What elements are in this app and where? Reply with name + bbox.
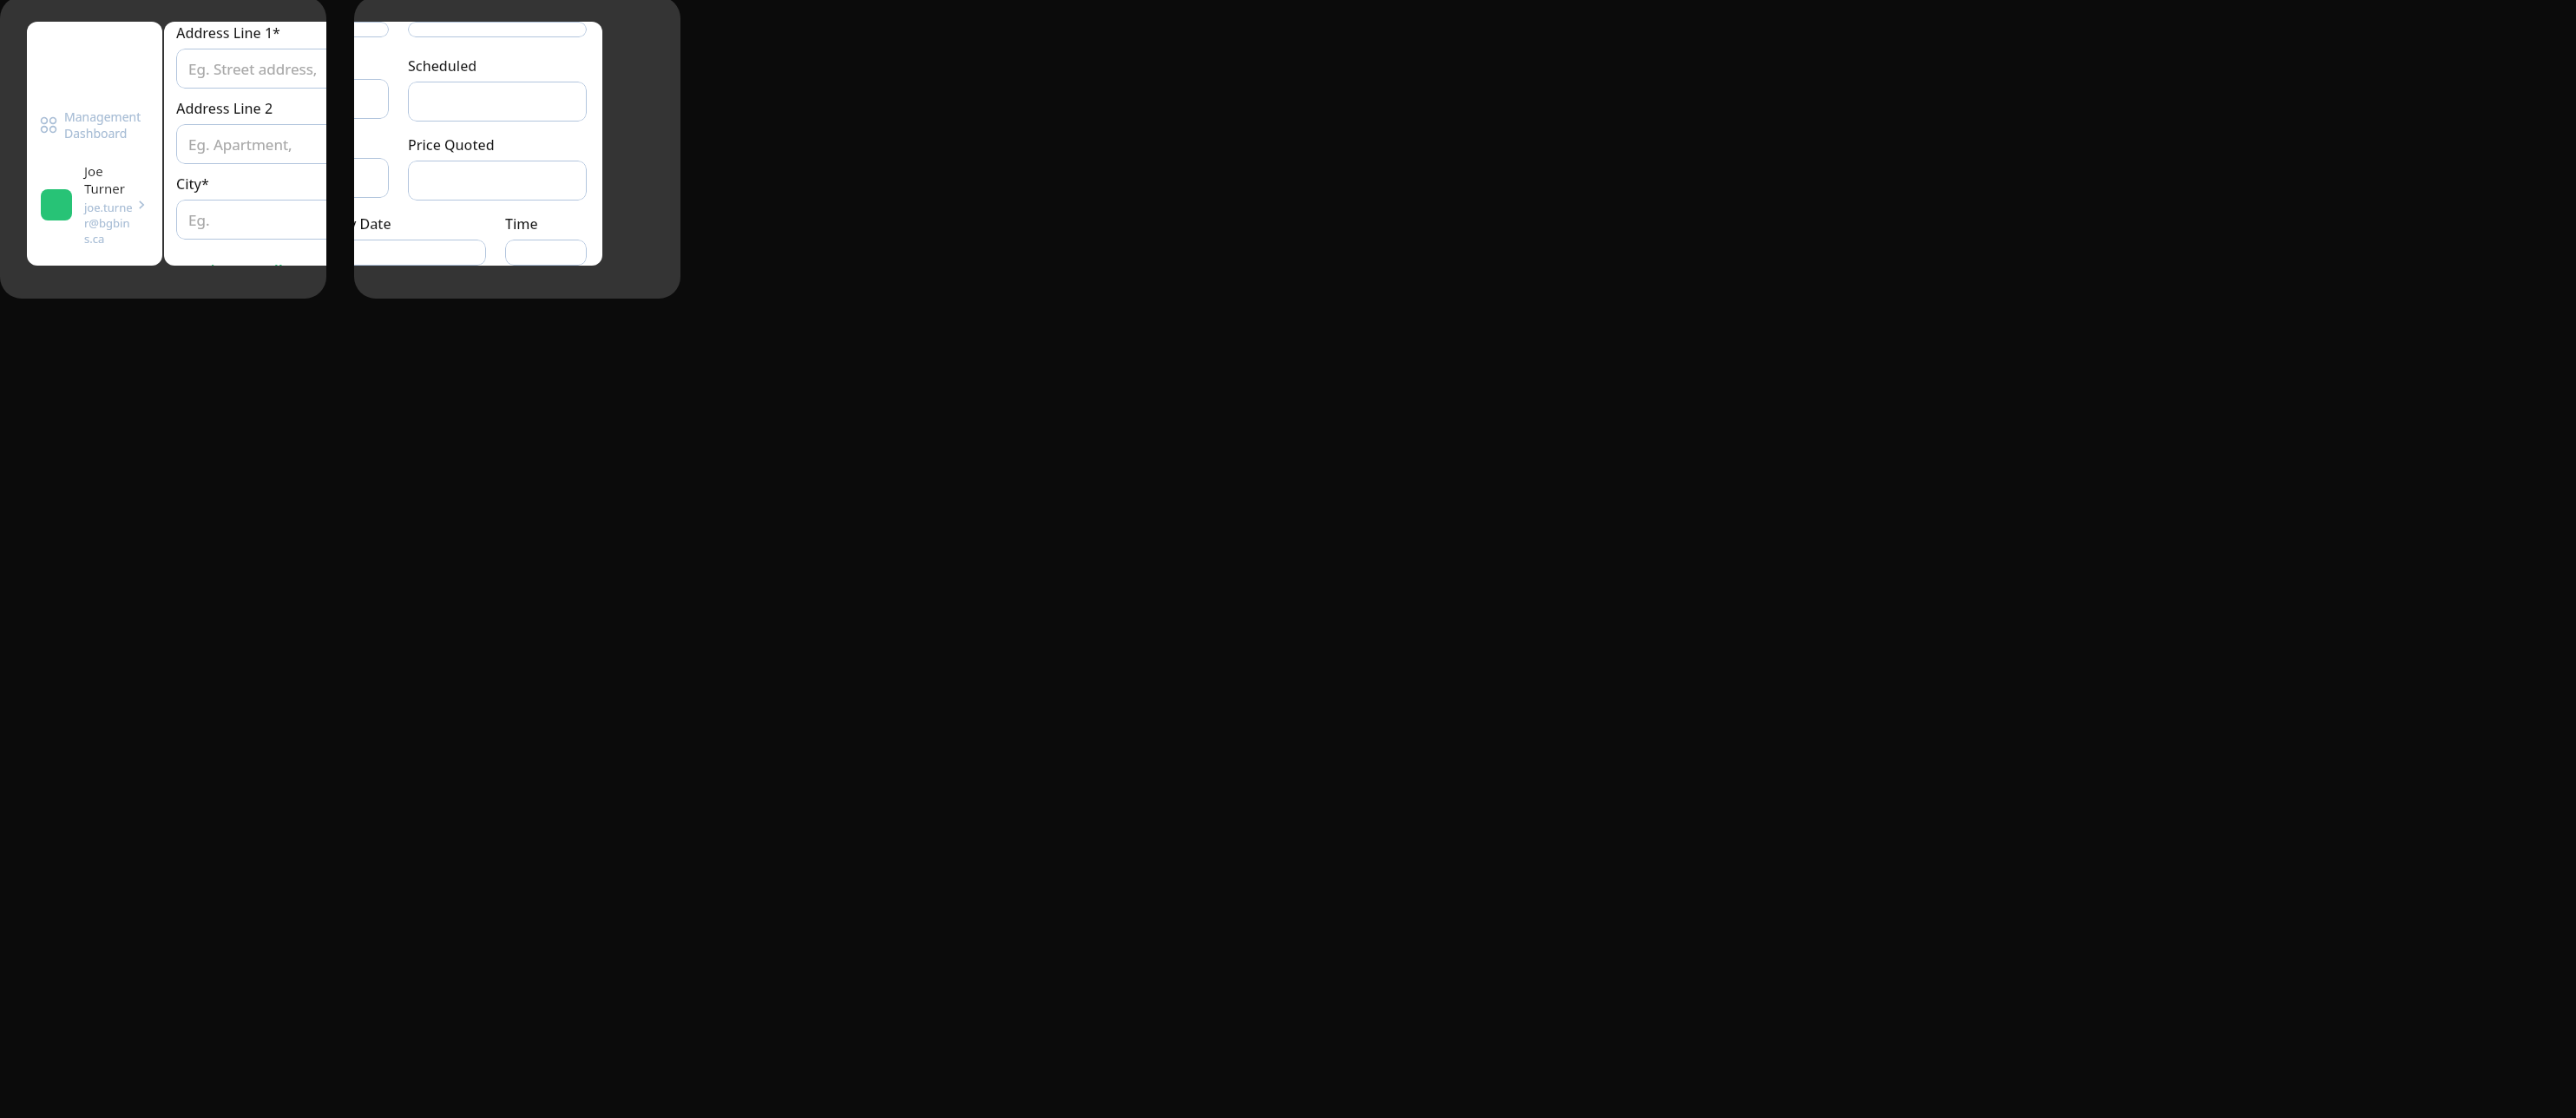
button[interactable] [408, 82, 587, 122]
button[interactable] [408, 161, 587, 201]
staticText: joe.turner@bgbins.ca [84, 200, 135, 247]
staticText: City* [176, 174, 209, 194]
button[interactable] [354, 158, 389, 198]
button[interactable]: Joe Turner [41, 159, 148, 250]
button[interactable] [354, 79, 389, 119]
staticText: Eg. john.doe@client.com [188, 210, 325, 230]
button[interactable]: Eg. john.doe@client.com [176, 200, 326, 240]
button[interactable] [505, 240, 587, 266]
staticText: Joe Turner [84, 162, 135, 197]
staticText: Price Quoted [408, 135, 495, 155]
staticText: Address Line 2 [176, 99, 273, 118]
button[interactable]: Management Dashboard [41, 103, 148, 147]
staticText: Scheduled [408, 56, 477, 76]
staticText: Eg. Street address, PO box, etc [188, 59, 325, 79]
other: Open profile [135, 198, 148, 212]
staticText: Service Details [176, 260, 292, 266]
button[interactable]: Eg. Apartment, suite, unit, building, et… [176, 124, 326, 164]
staticText: Time [505, 214, 538, 233]
staticText: Eg. Apartment, suite, unit, building, et… [188, 135, 325, 155]
button[interactable]: Eg. Street address, PO box, etc [176, 49, 326, 89]
button[interactable] [354, 240, 486, 266]
staticText: Management Dashboard [64, 109, 148, 141]
button[interactable] [354, 22, 389, 37]
button[interactable] [408, 22, 587, 37]
staticText: Delivery Date [354, 214, 391, 233]
staticText: Address Line 1* [176, 23, 280, 43]
